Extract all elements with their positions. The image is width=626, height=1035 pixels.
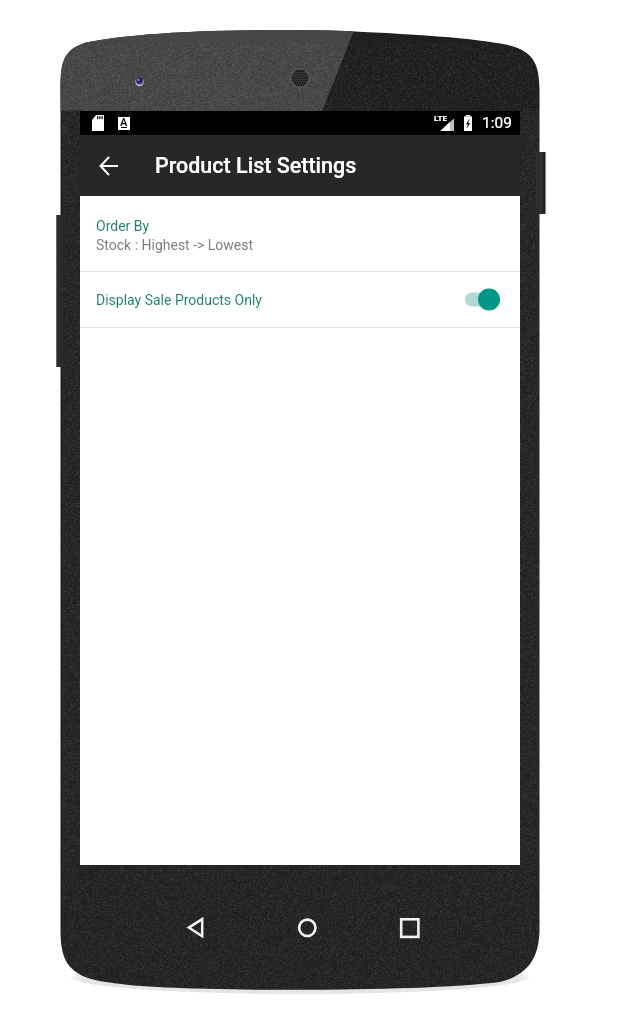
staticText: Display Sale Products Only: [96, 292, 262, 308]
staticText: A: [120, 116, 128, 129]
button[interactable]: Display Sale Products Only: [80, 272, 520, 327]
button[interactable]: Back: [86, 143, 132, 189]
staticText: LTE: [434, 114, 447, 123]
staticText: Product List Settings: [155, 153, 357, 178]
button[interactable]: Order By: [80, 196, 520, 271]
staticText: Order By: [96, 218, 150, 234]
staticText: 1:09: [482, 114, 512, 132]
button[interactable]: Toggle: [465, 288, 500, 311]
staticText: Stock : Highest -> Lowest: [96, 237, 254, 253]
